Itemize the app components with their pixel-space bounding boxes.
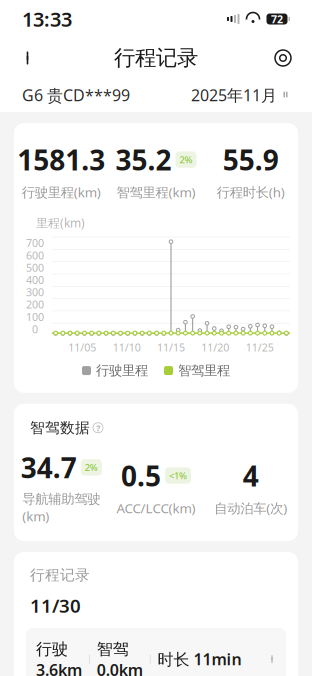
staticText: 34.7 (21, 449, 77, 486)
staticText: 行程记录 (30, 566, 90, 584)
staticText: 2% (179, 153, 192, 166)
staticText: 55.9 (223, 141, 279, 178)
staticText: 200 (26, 297, 44, 312)
staticText: 自动泊车(次) (214, 499, 287, 517)
staticText: 600 (26, 248, 44, 262)
staticText: 2025年11月 (191, 84, 277, 106)
button[interactable]: 智驾数据说明 (93, 423, 103, 433)
staticText: 里程(km) (36, 215, 85, 231)
staticText: 300 (26, 285, 44, 299)
staticText: G6 贵CD***99 (22, 84, 130, 106)
button[interactable]: 设置 (266, 41, 300, 75)
button[interactable]: 行驶 3.6km (26, 628, 286, 676)
button[interactable]: 2025年11月 (191, 84, 290, 106)
staticText: 11/20 (201, 340, 229, 354)
staticText: 智驾 0.0km (97, 638, 143, 676)
staticText: 智驾里程(km) (116, 183, 195, 201)
staticText: 行驶里程 (96, 362, 148, 379)
staticText: 11/25 (246, 340, 274, 354)
staticText: 0 (32, 322, 38, 336)
staticText: 行程记录 (114, 45, 198, 71)
staticText: ACC/LCC(km) (116, 499, 195, 517)
staticText: 行驶里程(km) (22, 183, 101, 201)
staticText: 导航辅助驾驶(km) (22, 491, 100, 525)
staticText: <1% (169, 469, 187, 482)
staticText: 1581.3 (17, 141, 105, 178)
staticText: 11/15 (157, 340, 185, 354)
button[interactable]: 返回 (12, 41, 46, 75)
staticText: 700 (26, 236, 44, 250)
staticText: 13:33 (22, 6, 72, 32)
staticText: 行驶 3.6km (36, 638, 82, 676)
staticText: 35.2 (115, 141, 171, 178)
staticText: 11/30 (30, 593, 81, 618)
staticText: 100 (26, 310, 44, 324)
staticText: 500 (26, 260, 44, 275)
staticText: 行程时长(h) (217, 183, 285, 201)
staticText: 智驾里程 (178, 362, 230, 379)
staticText: 400 (26, 273, 44, 287)
staticText: 2% (85, 461, 98, 474)
staticText: 智驾数据 (30, 419, 90, 437)
staticText: 4 (243, 457, 259, 494)
staticText: 72 (271, 12, 283, 26)
staticText: 0.5 (121, 457, 161, 494)
staticText: ? (96, 422, 100, 434)
staticText: 11/10 (113, 340, 141, 354)
staticText: 时长 11min (158, 648, 242, 670)
staticText: 11/05 (68, 340, 96, 354)
